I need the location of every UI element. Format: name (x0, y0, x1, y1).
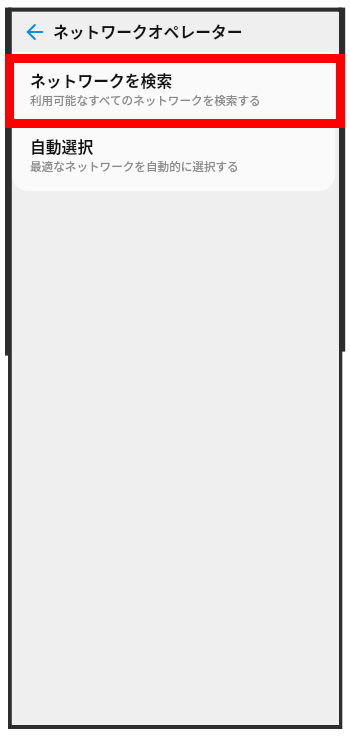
staticText: ネットワークを検索 (30, 69, 173, 92)
button[interactable]: Back (23, 20, 47, 44)
staticText: ネットワークオペレーター (53, 20, 243, 43)
button[interactable]: ネットワークを検索 (12, 52, 335, 118)
button[interactable]: 自動選択 (12, 118, 335, 191)
staticText: 自動選択 (30, 135, 94, 158)
staticText: 利用可能なすべてのネットワークを検索する (30, 92, 261, 109)
staticText: 最適なネットワークを自動的に選択する (30, 158, 239, 175)
